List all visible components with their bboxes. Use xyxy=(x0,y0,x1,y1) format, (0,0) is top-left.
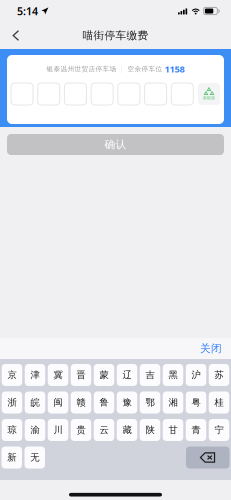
staticText: 藏 xyxy=(122,424,131,436)
staticText: 云 xyxy=(99,424,108,436)
button[interactable]: 鲁 xyxy=(94,391,114,413)
staticText: 苏 xyxy=(214,369,223,381)
button[interactable]: 闽 xyxy=(48,391,68,413)
button[interactable]: 豫 xyxy=(117,391,137,413)
staticText: ｜ xyxy=(116,65,127,73)
button[interactable]: Plate character xyxy=(91,83,113,105)
staticText: 1158 xyxy=(164,63,184,75)
staticText: 京 xyxy=(7,369,16,381)
staticText: 浙 xyxy=(7,397,16,408)
button[interactable]: 藏 xyxy=(117,419,137,441)
button[interactable]: Delete xyxy=(186,446,229,468)
staticText: 豫 xyxy=(122,397,131,408)
button[interactable]: 浙 xyxy=(2,391,22,413)
staticText: 川 xyxy=(53,424,62,436)
button[interactable]: 京 xyxy=(2,364,22,386)
staticText: 银泰温州世贸店停车场 xyxy=(46,65,116,73)
staticText: 陕 xyxy=(145,424,154,436)
button[interactable]: Plate character xyxy=(64,83,86,105)
staticText: 宁 xyxy=(214,424,223,436)
button[interactable]: Plate character xyxy=(118,83,140,105)
button[interactable]: 吉 xyxy=(140,364,160,386)
staticText: 冀 xyxy=(53,369,62,381)
staticText: 无 xyxy=(30,452,39,463)
button[interactable]: Plate character xyxy=(11,83,33,105)
staticText: 蒙 xyxy=(99,369,108,381)
button[interactable]: 粤 xyxy=(186,391,206,413)
button[interactable]: 渝 xyxy=(25,419,45,441)
button[interactable]: Back xyxy=(0,22,32,48)
staticText: 粤 xyxy=(191,397,200,408)
button[interactable]: 皖 xyxy=(25,391,45,413)
staticText: 空余停车位 xyxy=(127,65,164,73)
staticText: 青 xyxy=(191,424,200,436)
staticText: 喵街停车缴费 xyxy=(82,29,148,42)
button[interactable]: 晋 xyxy=(71,364,91,386)
button[interactable]: 确认 xyxy=(7,134,224,155)
button[interactable]: Plate character xyxy=(145,83,167,105)
staticText: 晋 xyxy=(76,369,85,381)
button[interactable]: 桂 xyxy=(209,391,229,413)
staticText: 黑 xyxy=(168,369,177,381)
staticText: 湘 xyxy=(168,397,177,408)
staticText: 吉 xyxy=(145,369,154,381)
button[interactable]: 沪 xyxy=(186,364,206,386)
button[interactable]: 关闭 xyxy=(191,338,231,359)
button[interactable]: 贵 xyxy=(71,419,91,441)
staticText: 5:14 xyxy=(17,4,38,18)
button[interactable]: 赣 xyxy=(71,391,91,413)
staticText: 新能源 xyxy=(203,95,215,100)
staticText: 鲁 xyxy=(99,397,108,408)
button[interactable]: 黑 xyxy=(163,364,183,386)
staticText: 津 xyxy=(30,369,39,381)
button[interactable]: 甘 xyxy=(163,419,183,441)
button[interactable]: 辽 xyxy=(117,364,137,386)
button[interactable]: 云 xyxy=(94,419,114,441)
staticText: 赣 xyxy=(76,397,85,408)
staticText: 确认 xyxy=(104,138,126,151)
button[interactable]: 苏 xyxy=(209,364,229,386)
button[interactable]: 青 xyxy=(186,419,206,441)
staticText: 甘 xyxy=(168,424,177,436)
button[interactable]: New energy plate xyxy=(198,83,220,105)
button[interactable]: 无 xyxy=(24,446,45,468)
staticText: 桂 xyxy=(214,397,223,408)
staticText: 琼 xyxy=(7,424,16,436)
button[interactable]: 湘 xyxy=(163,391,183,413)
button[interactable]: 陕 xyxy=(140,419,160,441)
staticText: 鄂 xyxy=(145,397,154,408)
button[interactable]: 蒙 xyxy=(94,364,114,386)
button[interactable]: 琼 xyxy=(2,419,22,441)
button[interactable]: 川 xyxy=(48,419,68,441)
staticText: 新 xyxy=(7,452,16,463)
button[interactable]: 鄂 xyxy=(140,391,160,413)
staticText: 渝 xyxy=(30,424,39,436)
staticText: 辽 xyxy=(122,369,131,381)
staticText: 关闭 xyxy=(200,342,222,355)
button[interactable]: 宁 xyxy=(209,419,229,441)
button[interactable]: 冀 xyxy=(48,364,68,386)
button[interactable]: 新 xyxy=(1,446,22,468)
staticText: 沪 xyxy=(191,369,200,381)
staticText: 贵 xyxy=(76,424,85,436)
button[interactable]: Plate character xyxy=(38,83,60,105)
button[interactable]: Plate character xyxy=(171,83,193,105)
staticText: 皖 xyxy=(30,397,39,408)
button[interactable]: 津 xyxy=(25,364,45,386)
staticText: 闽 xyxy=(53,397,62,408)
